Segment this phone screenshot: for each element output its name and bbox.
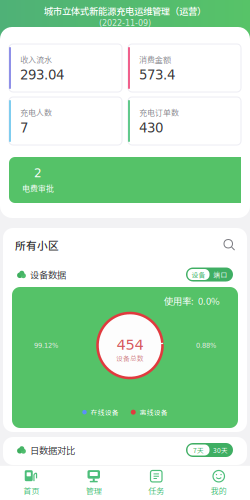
staticText: 管理 [86, 485, 102, 496]
button[interactable]: 充电订单数 [128, 97, 241, 145]
staticText: 我的 [211, 485, 227, 496]
staticText: 设备 [191, 270, 205, 279]
button[interactable]: 收入流水 [9, 44, 122, 92]
staticText: 7 [20, 120, 28, 135]
staticText: 充电人数 [20, 106, 52, 118]
staticText: 首页 [23, 485, 39, 496]
button[interactable]: Search [224, 239, 235, 250]
staticText: 2 [34, 166, 42, 180]
staticText: 离线设备 [140, 407, 168, 417]
staticText: 设备总数 [116, 353, 144, 363]
staticText: 30天 [213, 445, 228, 455]
staticText: 日数据对比 [30, 443, 75, 457]
staticText: 7天 [193, 445, 204, 455]
staticText: 430 [139, 120, 163, 135]
staticText: 293.04 [20, 67, 64, 82]
staticText: (2022-11-09) [99, 18, 151, 28]
button[interactable]: 7天 [187, 444, 209, 455]
button[interactable]: 端口 [209, 269, 231, 280]
button[interactable]: 首页 [0, 466, 62, 500]
button[interactable]: 设备 [187, 269, 209, 280]
staticText: 收入流水 [20, 53, 52, 65]
button[interactable]: 30天 [209, 444, 231, 455]
staticText: 在线设备 [91, 407, 119, 417]
staticText: 任务 [148, 485, 164, 496]
staticText: 端口 [213, 270, 227, 279]
staticText: 电费审批 [22, 182, 54, 194]
button[interactable]: 充电人数 [9, 97, 122, 145]
staticText: 使用率: 0.0% [164, 294, 220, 307]
staticText: 573.4 [139, 67, 175, 82]
staticText: 设备数据 [30, 268, 66, 281]
staticText: 所有小区 [15, 237, 59, 253]
staticText: 454 [116, 336, 143, 353]
staticText: 城市立体式新能源充电运维管理（运营） [44, 4, 206, 17]
button[interactable]: 管理 [62, 466, 125, 500]
button[interactable]: 2 [9, 157, 241, 203]
button[interactable]: 任务 [125, 466, 187, 500]
staticText: 消费金额 [139, 53, 171, 65]
staticText: 0.88% [196, 342, 216, 349]
staticText: 充电订单数 [139, 106, 179, 118]
staticText: 99.12% [34, 342, 58, 349]
button[interactable]: 我的 [187, 466, 250, 500]
button[interactable]: 消费金额 [128, 44, 241, 92]
